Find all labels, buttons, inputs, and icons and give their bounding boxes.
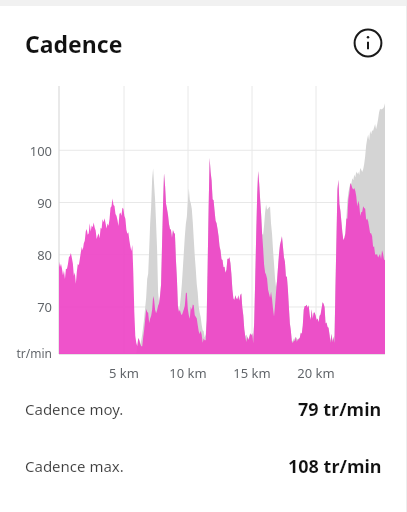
button[interactable]: Cadence max.: [0, 450, 407, 482]
staticText: 90: [14, 194, 52, 212]
staticText: 5 km: [94, 364, 154, 382]
button[interactable]: Cadence moy.: [0, 393, 407, 425]
staticText: 100: [14, 142, 52, 160]
staticText: 80: [14, 246, 52, 264]
staticText: 79 tr/min: [298, 397, 382, 422]
staticText: 20 km: [286, 364, 346, 382]
staticText: Cadence moy.: [25, 399, 124, 419]
staticText: 10 km: [158, 364, 218, 382]
staticText: Cadence: [25, 28, 123, 59]
staticText: 70: [14, 298, 52, 316]
button[interactable]: Information: [351, 26, 385, 60]
staticText: tr/min: [7, 345, 52, 361]
staticText: 108 tr/min: [288, 454, 382, 479]
staticText: Cadence max.: [25, 456, 124, 476]
staticText: 15 km: [222, 364, 282, 382]
